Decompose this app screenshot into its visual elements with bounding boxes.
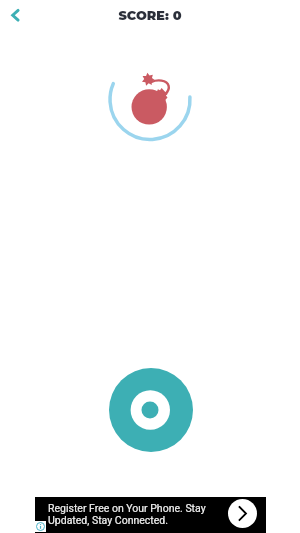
button[interactable]: Tap [109, 368, 193, 452]
button[interactable]: Register Free on Your Phone. Stay Update… [35, 497, 266, 533]
staticText: SCORE: 0 [118, 8, 182, 24]
staticText: Register Free on Your Phone. Stay Update… [48, 502, 213, 526]
button[interactable]: Back [0, 0, 30, 30]
button[interactable]: Open ad [228, 499, 257, 528]
